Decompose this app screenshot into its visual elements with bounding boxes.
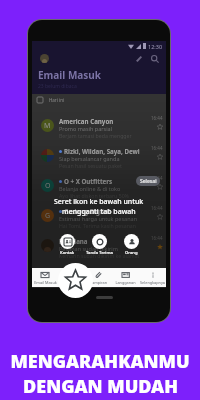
staticText: Belanja online & di toko [59, 185, 121, 192]
staticText: 16:44 [151, 145, 163, 151]
staticText: Orang [125, 250, 138, 256]
button[interactable]: Selesai [136, 176, 160, 186]
staticText: G [45, 211, 51, 221]
staticText: Rizki, Wildan, Saya, Dewi [64, 147, 140, 155]
staticText: O + X Outfitters [64, 177, 113, 185]
button[interactable]: Berbintang [58, 269, 85, 287]
staticText: Hari ini [49, 97, 65, 103]
button[interactable]: M [32, 112, 166, 142]
staticText: Email Masuk [38, 68, 102, 82]
staticText: Tanda Terima [86, 250, 113, 256]
button[interactable]: Account [40, 54, 49, 63]
staticText: 16:44 [151, 235, 163, 241]
button[interactable]: Meidiana [32, 232, 166, 262]
staticText: Hai Tomi, Terima kasih pesanan [59, 222, 136, 229]
staticText: 23 belum dibaca [38, 83, 77, 90]
button[interactable]: O [32, 172, 166, 202]
staticText: mengganti tab bawah [62, 207, 136, 217]
button[interactable]: Selengkapnya [139, 269, 166, 287]
button[interactable]: Berbintang [58, 263, 93, 298]
button[interactable]: Orang [124, 234, 139, 256]
staticText: Langganan [115, 280, 136, 285]
staticText: 12:30 [148, 43, 163, 50]
staticText: Email Masuk [34, 280, 57, 285]
staticText: Selengkapnya [140, 280, 165, 285]
staticText: 16:44 [151, 205, 163, 211]
staticText: 16:44 [151, 115, 163, 121]
staticText: Selesai [140, 178, 157, 185]
staticText: 16:44 [151, 175, 163, 181]
button[interactable]: Search [149, 53, 161, 65]
staticText: MENGARAHKANMU [10, 349, 190, 374]
staticText: Seret ikon ke bawah untuk [54, 197, 144, 207]
button[interactable]: Kontak [60, 234, 75, 256]
button[interactable]: Langganan [112, 269, 139, 287]
button[interactable]: G [32, 202, 166, 232]
button[interactable]: Rizki, Wildan, Saya, Dewi [32, 142, 166, 172]
staticText: O [45, 181, 51, 191]
staticText: Siap bersalancar ganda [59, 155, 120, 162]
staticText: Pesan hasil sesuatu paket [59, 162, 122, 169]
staticText: Estimasi harga untuk pesanan [59, 215, 138, 222]
staticText: Promo masih parsial [59, 125, 113, 132]
staticText: Kemarin sudah dikirim ke alamat [59, 252, 140, 259]
staticText: M [44, 121, 51, 131]
button[interactable]: Email Masuk [32, 269, 58, 287]
button[interactable]: Compose [133, 53, 145, 65]
staticText: Gudang Digital [64, 207, 111, 215]
staticText: Berbintang [61, 280, 82, 285]
staticText: Ayo lihat diskon terbaru 50% [59, 192, 129, 199]
button[interactable]: Tanda Terima [86, 234, 113, 256]
staticText: Lampiran [90, 280, 107, 285]
staticText: Meidiana [59, 237, 88, 245]
staticText: American Canyon [59, 117, 114, 125]
staticText: DENGAN MUDAH [23, 374, 178, 399]
staticText: Berjam tamasi beda mengger kembali [59, 132, 151, 139]
staticText: Kontak [60, 250, 75, 256]
staticText: Pesanan sudah dikirim [59, 245, 118, 252]
button[interactable]: Lampiran [85, 269, 112, 287]
